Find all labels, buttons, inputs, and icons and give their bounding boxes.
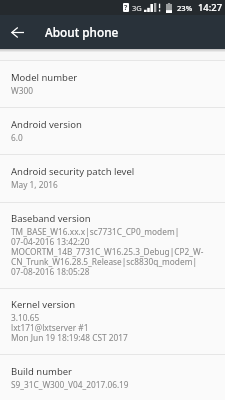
- staticText: May 1, 2016: [11, 179, 58, 190]
- button[interactable]: Model number: [0, 61, 225, 107]
- staticText: Baseband version: [11, 212, 91, 225]
- staticText: W300: [11, 85, 33, 96]
- staticText: 6.0: [11, 132, 23, 143]
- button[interactable]: Build number: [0, 355, 225, 400]
- staticText: Kernel version: [11, 298, 76, 311]
- staticText: ?: [124, 3, 128, 12]
- staticText: About phone: [45, 24, 119, 40]
- staticText: 3G: [132, 3, 142, 13]
- staticText: Build number: [11, 365, 73, 378]
- staticText: TM_BASE_W16.xx.x|sc7731C_CP0_modem| 07-0…: [11, 226, 204, 277]
- button[interactable]: Android security patch level: [0, 155, 225, 202]
- staticText: 23%: [177, 3, 193, 13]
- button[interactable]: Android version: [0, 108, 225, 154]
- staticText: Android security patch level: [11, 165, 135, 178]
- button[interactable]: Baseband version: [0, 203, 225, 288]
- button[interactable]: Kernel version: [0, 289, 225, 354]
- staticText: 14:27: [198, 1, 223, 14]
- staticText: 3.10.65 lxt171@lxtserver #1 Mon Jun 19 1…: [11, 312, 128, 343]
- staticText: Model number: [11, 71, 78, 84]
- staticText: S9_31C_W300_V04_2017.06.19: [11, 379, 129, 390]
- staticText: Android version: [11, 118, 82, 131]
- button[interactable]: Navigate up: [0, 15, 34, 49]
